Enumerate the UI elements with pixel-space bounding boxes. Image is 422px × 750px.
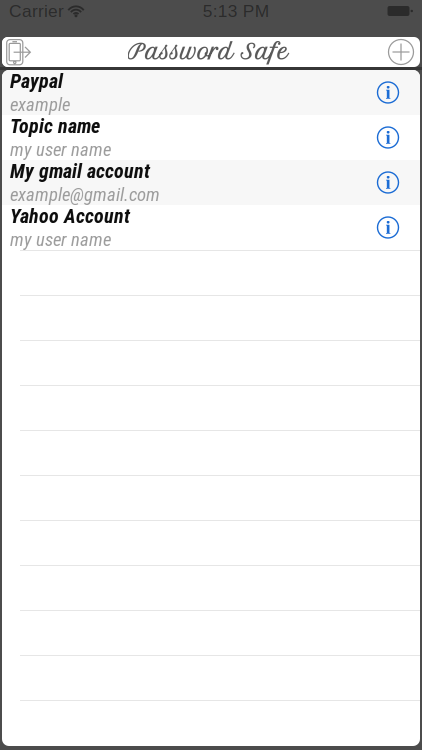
staticText: Carrier <box>9 1 64 21</box>
staticText: Topic name <box>10 114 100 138</box>
staticText: my user name <box>10 139 111 161</box>
button[interactable]: Details <box>367 115 409 160</box>
button[interactable]: Details <box>367 205 409 250</box>
button[interactable]: Details <box>367 160 409 205</box>
staticText: i <box>385 172 390 193</box>
staticText: i <box>385 127 390 148</box>
staticText: example@gmail.com <box>10 184 160 206</box>
button[interactable]: Details <box>367 70 409 115</box>
button[interactable]: Yahoo Account <box>2 205 420 250</box>
staticText: Password Safe <box>127 39 288 65</box>
staticText: my user name <box>10 229 111 251</box>
button[interactable]: Paypal <box>2 70 420 115</box>
staticText: i <box>385 217 390 238</box>
button[interactable]: Export <box>2 37 38 67</box>
staticText: Yahoo Account <box>10 204 130 228</box>
button[interactable]: Topic name <box>2 115 420 160</box>
staticText: Paypal <box>10 69 63 93</box>
button[interactable]: My gmail account <box>2 160 420 205</box>
staticText: i <box>385 82 390 103</box>
staticText: example <box>10 94 70 116</box>
staticText: 5:13 PM <box>203 1 269 21</box>
button[interactable]: Add <box>384 37 420 67</box>
staticText: My gmail account <box>10 159 150 183</box>
